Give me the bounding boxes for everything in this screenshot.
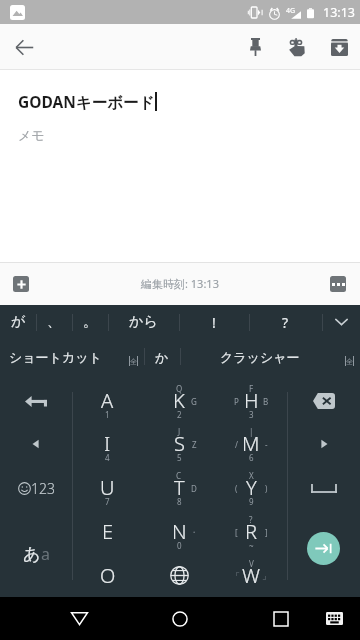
- staticText: 0: [177, 540, 182, 551]
- staticText: ?: [282, 313, 289, 332]
- button[interactable]: Move cursor right: [287, 422, 360, 466]
- staticText: J: [178, 426, 181, 437]
- staticText: ): [265, 483, 268, 494]
- button[interactable]: Return: [0, 379, 72, 422]
- staticText: T: [174, 474, 185, 501]
- button[interactable]: R: [215, 509, 287, 553]
- button[interactable]: A: [72, 379, 143, 422]
- button[interactable]: [143, 553, 215, 597]
- staticText: I: [104, 430, 111, 457]
- staticText: B: [263, 396, 269, 407]
- staticText: 13:13: [323, 4, 355, 21]
- staticText: クラッシャー: [220, 349, 300, 365]
- staticText: O: [100, 562, 116, 589]
- button[interactable]: U: [72, 465, 143, 509]
- staticText: 、: [47, 313, 61, 331]
- staticText: ]: [265, 527, 268, 538]
- button[interactable]: あ: [0, 510, 72, 597]
- staticText: -: [265, 439, 268, 450]
- staticText: 8: [177, 496, 182, 507]
- button[interactable]: Y: [215, 465, 287, 509]
- button[interactable]: Add: [0, 263, 42, 305]
- staticText: C: [176, 470, 182, 481]
- staticText: a: [41, 543, 50, 565]
- staticText: ・: [190, 527, 198, 537]
- staticText: あ: [23, 544, 41, 565]
- button[interactable]: !: [179, 305, 249, 339]
- button[interactable]: More suggestions: [322, 305, 360, 339]
- button[interactable]: E: [72, 509, 143, 553]
- staticText: 編集時刻: 13:13: [141, 276, 219, 291]
- staticText: Y: [246, 474, 257, 501]
- staticText: G: [191, 396, 197, 407]
- button[interactable]: [180, 339, 360, 374]
- button[interactable]: Back: [1, 24, 47, 70]
- staticText: から: [129, 313, 158, 331]
- staticText: GODANキーボード: [18, 91, 155, 112]
- staticText: V: [249, 558, 254, 569]
- button[interactable]: H: [215, 379, 287, 422]
- staticText: H: [244, 387, 259, 414]
- staticText: F: [249, 383, 254, 394]
- staticText: K: [173, 387, 185, 414]
- staticText: 6: [249, 452, 254, 463]
- button[interactable]: Enter: [307, 532, 340, 565]
- staticText: ショートカット: [9, 349, 102, 365]
- staticText: 4: [105, 452, 110, 463]
- staticText: か: [155, 349, 169, 365]
- staticText: 5: [177, 452, 182, 463]
- staticText: M: [242, 430, 260, 457]
- button[interactable]: K: [143, 379, 215, 422]
- staticText: N: [172, 518, 187, 545]
- staticText: メモ: [18, 127, 45, 143]
- staticText: が: [11, 313, 26, 331]
- button[interactable]: M: [215, 422, 287, 465]
- staticText: Q: [176, 383, 183, 394]
- button[interactable]: More options: [317, 263, 359, 305]
- button[interactable]: N: [143, 509, 215, 553]
- staticText: 全: [346, 357, 353, 366]
- staticText: (: [235, 483, 238, 494]
- button[interactable]: W: [215, 553, 287, 597]
- button[interactable]: ?: [249, 305, 322, 339]
- staticText: 全: [130, 357, 137, 366]
- button[interactable]: 。: [72, 305, 108, 339]
- button[interactable]: Pin: [234, 26, 276, 68]
- button[interactable]: が: [0, 305, 36, 339]
- staticText: ?: [249, 514, 253, 525]
- button[interactable]: から: [108, 305, 179, 339]
- staticText: P: [234, 396, 239, 407]
- button[interactable]: Home: [157, 597, 203, 640]
- button[interactable]: T: [143, 465, 215, 509]
- staticText: 3: [249, 409, 254, 420]
- button[interactable]: Recent apps: [258, 597, 304, 640]
- button[interactable]: Back: [56, 597, 102, 640]
- staticText: R: [245, 518, 257, 545]
- button[interactable]: Archive: [318, 26, 360, 68]
- staticText: E: [102, 518, 114, 545]
- staticText: 2: [177, 409, 182, 420]
- staticText: /: [235, 439, 238, 450]
- staticText: 123: [31, 479, 55, 498]
- button[interactable]: Move cursor left: [0, 422, 72, 466]
- button[interactable]: Space: [287, 466, 360, 510]
- staticText: 1: [105, 409, 110, 420]
- staticText: [: [235, 527, 238, 538]
- button[interactable]: [0, 339, 144, 374]
- button[interactable]: S: [143, 422, 215, 465]
- staticText: ~: [249, 540, 254, 551]
- button[interactable]: Reminder: [276, 26, 318, 68]
- button[interactable]: I: [72, 422, 143, 465]
- staticText: 」: [262, 571, 270, 581]
- button[interactable]: Switch keyboard: [316, 597, 352, 640]
- button[interactable]: か: [144, 339, 180, 374]
- button[interactable]: O: [72, 553, 143, 597]
- button[interactable]: Delete: [287, 379, 360, 422]
- staticText: 9: [249, 496, 254, 507]
- button[interactable]: Symbols and numbers: [0, 466, 72, 510]
- staticText: Z: [192, 439, 197, 450]
- staticText: 4G: [286, 6, 296, 16]
- staticText: |: [249, 426, 254, 437]
- staticText: X: [249, 470, 254, 481]
- button[interactable]: 、: [36, 305, 72, 339]
